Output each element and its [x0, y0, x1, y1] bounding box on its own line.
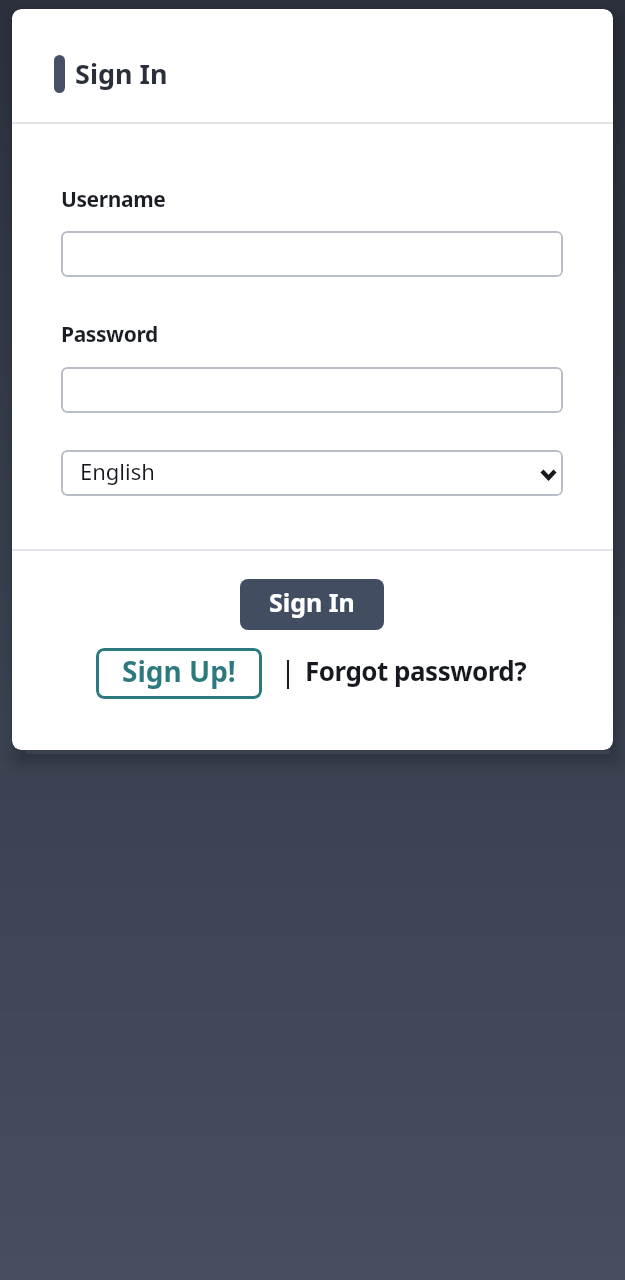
staticText: Sign Up! — [122, 652, 236, 690]
staticText: Forgot password? — [305, 653, 527, 688]
button[interactable] — [61, 367, 563, 413]
staticText: English — [80, 456, 155, 486]
staticText: Sign In — [269, 585, 355, 619]
staticText: Sign In — [75, 55, 168, 92]
button[interactable]: Sign In — [240, 579, 384, 630]
staticText: | — [280, 651, 296, 690]
staticText: Username — [61, 185, 166, 214]
button[interactable]: English — [61, 450, 563, 496]
staticText: Password — [61, 320, 158, 349]
button[interactable]: Sign Up! — [96, 648, 262, 699]
button[interactable] — [61, 231, 563, 277]
button[interactable]: | — [280, 648, 527, 699]
